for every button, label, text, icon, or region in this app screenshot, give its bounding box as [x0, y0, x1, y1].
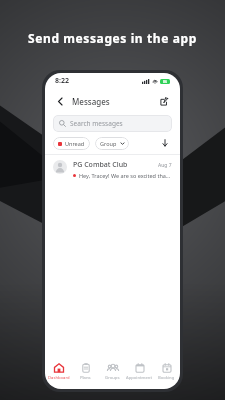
- button[interactable]: Dashboard: [45, 359, 72, 385]
- button[interactable]: PG Combat Club: [45, 155, 180, 184]
- button[interactable]: Plans: [72, 359, 99, 385]
- button[interactable]: Group: [95, 137, 129, 150]
- staticText: Groups: [105, 375, 120, 381]
- staticText: Dashboard: [48, 375, 70, 381]
- staticText: Send messages in the app: [28, 30, 197, 46]
- button[interactable]: Search messages: [53, 115, 172, 132]
- staticText: Plans: [80, 375, 91, 381]
- button[interactable]: Appointments: [126, 359, 153, 385]
- staticText: Group: [100, 140, 117, 147]
- staticText: Booking: [158, 375, 175, 381]
- staticText: 8:22: [55, 76, 69, 86]
- button[interactable]: Back: [53, 94, 67, 108]
- button[interactable]: Booking: [153, 359, 180, 385]
- button[interactable]: Sort: [158, 136, 172, 150]
- staticText: Hey, Tracey! We are so excited that yo..…: [79, 172, 172, 179]
- staticText: PG Combat Club: [73, 160, 154, 170]
- staticText: Unread: [65, 140, 85, 147]
- staticText: Messages: [72, 96, 110, 107]
- staticText: 86: [163, 79, 168, 84]
- staticText: Search messages: [70, 119, 123, 128]
- button[interactable]: Unread: [53, 137, 90, 150]
- staticText: Aug 7: [158, 162, 172, 169]
- button[interactable]: Groups: [99, 359, 126, 385]
- button[interactable]: Compose message: [156, 93, 172, 109]
- staticText: Appointments: [126, 375, 153, 381]
